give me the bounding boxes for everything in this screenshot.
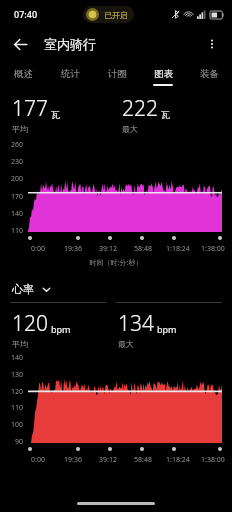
staticText: 130: [11, 370, 24, 380]
button[interactable]: 计圈: [94, 60, 140, 88]
staticText: 图表: [154, 68, 173, 80]
staticText: 1:38:00: [201, 244, 225, 254]
staticText: 07:40: [14, 8, 38, 20]
button[interactable]: 装备: [186, 60, 232, 88]
staticText: 230: [11, 157, 24, 167]
staticText: 室内骑行: [44, 36, 96, 52]
staticText: 134: [118, 309, 154, 338]
staticText: 140: [11, 353, 24, 363]
staticText: 最大: [118, 339, 134, 349]
staticText: 计圈: [108, 68, 127, 80]
button[interactable]: More options: [198, 30, 226, 58]
staticText: 平均: [12, 124, 28, 134]
staticText: 120: [12, 309, 48, 338]
staticText: 1:18:24: [166, 244, 190, 254]
staticText: 58:48: [134, 244, 152, 254]
staticText: 已开启: [104, 10, 128, 20]
button[interactable]: 概述: [0, 60, 47, 88]
button[interactable]: 心率: [12, 282, 52, 296]
staticText: 140: [11, 209, 24, 219]
staticText: 120: [11, 387, 24, 397]
staticText: bpm: [51, 323, 71, 335]
staticText: 58:48: [134, 455, 152, 465]
staticText: 1:38:00: [201, 455, 225, 465]
staticText: 222: [122, 94, 158, 123]
staticText: 19:36: [64, 455, 82, 465]
staticText: 装备: [200, 68, 219, 80]
staticText: 统计: [61, 68, 80, 80]
staticText: 90: [15, 437, 24, 447]
button[interactable]: Back: [6, 30, 34, 58]
staticText: 177: [12, 94, 48, 123]
staticText: 110: [11, 403, 24, 413]
staticText: 39:12: [99, 244, 117, 254]
staticText: 200: [11, 174, 24, 184]
button[interactable]: 统计: [47, 60, 94, 88]
staticText: 概述: [14, 68, 33, 80]
staticText: 心率: [12, 282, 34, 296]
staticText: bpm: [157, 323, 177, 335]
staticText: 时间（时:分:秒）: [0, 258, 232, 268]
staticText: 260: [11, 140, 24, 150]
staticText: 平均: [12, 339, 28, 349]
staticText: 110: [11, 226, 24, 236]
staticText: 39:12: [99, 455, 117, 465]
staticText: 170: [11, 192, 24, 202]
staticText: 瓦: [161, 109, 170, 120]
staticText: 1:18:24: [166, 455, 190, 465]
staticText: 100: [11, 420, 24, 430]
staticText: 瓦: [51, 109, 60, 120]
staticText: 19:36: [64, 244, 82, 254]
staticText: 0:00: [31, 244, 45, 254]
button[interactable]: 图表: [140, 60, 186, 88]
staticText: 最大: [122, 124, 138, 134]
staticText: 0:00: [31, 455, 45, 465]
